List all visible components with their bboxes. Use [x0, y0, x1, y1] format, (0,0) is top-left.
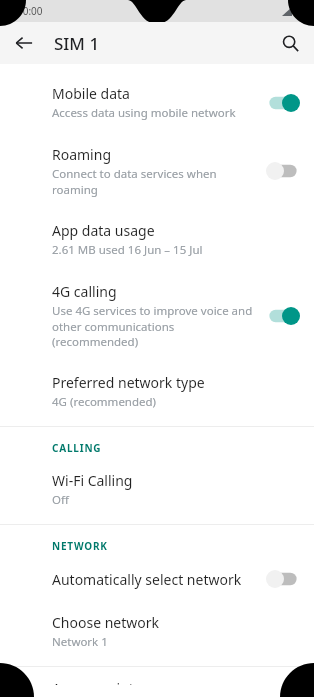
button[interactable]: 4G calling: [0, 270, 314, 361]
staticText: Preferred network type: [52, 373, 205, 392]
staticText: Off: [52, 492, 69, 508]
staticText: CALLING: [52, 441, 102, 455]
staticText: Network 1: [52, 634, 108, 650]
staticText: App data usage: [52, 221, 155, 240]
button[interactable]: Search: [272, 25, 308, 61]
staticText: Connect to data services when roaming: [52, 166, 258, 197]
staticText: 4G calling: [52, 282, 117, 301]
staticText: 2.61 MB used 16 Jun – 15 Jul: [52, 242, 203, 258]
staticText: 4G (recommended): [52, 394, 157, 410]
button[interactable]: Automatically select network: [0, 557, 314, 601]
staticText: Choose network: [52, 613, 160, 632]
staticText: Access data using mobile network: [52, 105, 236, 121]
button[interactable]: Wi-Fi Calling: [0, 459, 314, 520]
staticText: Automatically select network: [52, 570, 242, 589]
button[interactable]: Access point names: [0, 667, 314, 697]
staticText: Mobile data: [52, 84, 130, 103]
button[interactable]: Off: [266, 569, 300, 589]
staticText: Roaming: [52, 145, 111, 164]
staticText: Wi-Fi Calling: [52, 471, 133, 490]
button[interactable]: Preferred network type: [0, 361, 314, 422]
staticText: Access point names: [52, 679, 182, 685]
staticText: SIM 1: [54, 32, 100, 55]
button[interactable]: Roaming: [0, 133, 314, 209]
button[interactable]: Off: [266, 161, 300, 181]
staticText: 10:00: [17, 4, 43, 18]
button[interactable]: Choose network: [0, 601, 314, 662]
button[interactable]: Back: [6, 25, 42, 61]
staticText: NETWORK: [52, 539, 108, 553]
button[interactable]: App data usage: [0, 209, 314, 270]
button[interactable]: Mobile data: [0, 72, 314, 133]
staticText: Use 4G services to improve voice and oth…: [52, 303, 258, 349]
button[interactable]: On: [266, 93, 300, 113]
button[interactable]: On: [266, 306, 300, 326]
